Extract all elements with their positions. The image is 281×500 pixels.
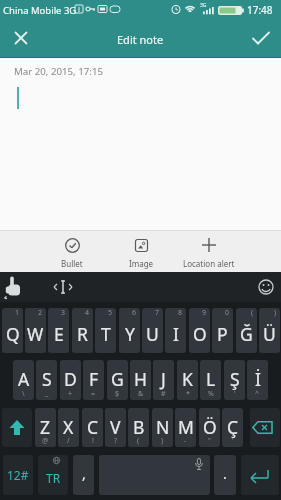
staticText: Q <box>6 322 20 346</box>
staticText: ) <box>161 436 164 446</box>
button[interactable]: O <box>189 308 210 353</box>
staticText: Mar 20, 2015, 17:15 <box>14 65 103 78</box>
staticText: 4 <box>85 308 90 318</box>
staticText: O <box>193 322 207 346</box>
button[interactable]: M <box>175 408 196 447</box>
staticText: 8 <box>178 308 183 318</box>
staticText: Image <box>129 258 154 269</box>
button[interactable] <box>245 23 275 53</box>
button[interactable]: Image <box>115 232 167 272</box>
staticText: 5 <box>108 308 113 318</box>
button[interactable]: Y <box>119 308 140 353</box>
staticText: 9 <box>202 308 207 318</box>
button[interactable]: N <box>152 408 173 447</box>
staticText: 12# <box>7 467 29 483</box>
staticText: C <box>87 415 99 439</box>
button[interactable]: K <box>177 360 198 400</box>
staticText: F <box>89 367 99 391</box>
button[interactable]: Location alert <box>179 232 239 272</box>
button[interactable]: A <box>13 360 34 400</box>
button[interactable]: D <box>60 360 81 400</box>
button[interactable]: P <box>212 308 233 353</box>
button[interactable]: X <box>58 408 79 447</box>
staticText: ' <box>234 389 236 399</box>
staticText: ? <box>114 436 118 446</box>
button[interactable]: F <box>83 360 104 400</box>
staticText: 6 <box>132 308 137 318</box>
staticText: - <box>184 436 187 446</box>
button[interactable]: I <box>165 308 186 353</box>
staticText: D <box>64 367 77 391</box>
button[interactable]: İ <box>247 360 268 400</box>
staticText: ( <box>251 308 254 318</box>
button[interactable]: H <box>130 360 151 400</box>
staticText: Y <box>125 322 135 346</box>
staticText: A <box>18 367 30 391</box>
button[interactable]: R <box>72 308 93 353</box>
button[interactable]: U <box>142 308 163 353</box>
staticText: 3 <box>61 308 66 318</box>
button[interactable]: Q <box>2 308 23 353</box>
staticText: M <box>178 415 194 439</box>
button[interactable]: Ğ <box>236 308 257 353</box>
staticText: ! <box>92 436 94 446</box>
staticText: # <box>161 389 166 399</box>
button[interactable]: TR <box>38 455 68 495</box>
staticText: % <box>208 389 214 399</box>
staticText: ^ <box>255 389 260 399</box>
staticText: Ş <box>230 367 240 391</box>
button[interactable] <box>6 23 36 53</box>
staticText: 17:48 <box>247 3 273 17</box>
button[interactable]: 12# <box>3 455 33 495</box>
button[interactable]: Ç <box>222 408 243 447</box>
staticText: E <box>54 322 64 346</box>
button[interactable]: E <box>48 308 69 353</box>
staticText: H <box>134 367 147 391</box>
button[interactable]: L <box>200 360 221 400</box>
staticText: * <box>186 389 190 399</box>
staticText: B <box>133 415 145 439</box>
staticText: V <box>110 415 121 439</box>
button[interactable]: J <box>153 360 174 400</box>
staticText: I <box>173 322 179 346</box>
button[interactable]: C <box>82 408 103 447</box>
button[interactable]: Ş <box>224 360 245 400</box>
staticText: S <box>42 367 52 391</box>
staticText: & <box>138 389 144 399</box>
button[interactable]: Bullet <box>47 232 97 272</box>
staticText: ( <box>137 436 140 446</box>
button[interactable]: W <box>25 308 46 353</box>
button[interactable]: . <box>214 455 236 495</box>
button[interactable]: S <box>36 360 57 400</box>
staticText: 3G <box>200 2 207 9</box>
staticText: / <box>67 436 70 446</box>
staticText: N <box>156 415 170 439</box>
staticText: Ç <box>227 415 239 439</box>
staticText: 7 <box>155 308 160 318</box>
staticText: . <box>223 464 227 483</box>
staticText: 2 <box>38 308 43 318</box>
button[interactable]: G <box>107 360 128 400</box>
staticText: G <box>111 367 124 391</box>
button[interactable] <box>241 455 279 495</box>
button[interactable] <box>99 455 210 495</box>
button[interactable]: Z <box>35 408 56 447</box>
staticText: K <box>182 367 193 391</box>
button[interactable]: Ü <box>259 308 280 353</box>
button[interactable]: V <box>105 408 126 447</box>
button[interactable] <box>250 408 280 447</box>
staticText: Z <box>40 415 51 439</box>
staticText: X <box>63 415 74 439</box>
button[interactable] <box>2 408 32 447</box>
staticText: China Mobile 3G <box>3 4 77 17</box>
staticText: Ğ <box>240 322 253 346</box>
button[interactable]: Ö <box>199 408 220 447</box>
button[interactable]: B <box>128 408 149 447</box>
staticText: \ <box>22 389 25 399</box>
staticText: Bullet <box>61 258 83 269</box>
staticText: TR <box>46 470 61 486</box>
button[interactable]: , <box>73 455 94 495</box>
button[interactable]: T <box>95 308 116 353</box>
staticText: P <box>217 322 228 346</box>
staticText: İ <box>255 367 261 391</box>
